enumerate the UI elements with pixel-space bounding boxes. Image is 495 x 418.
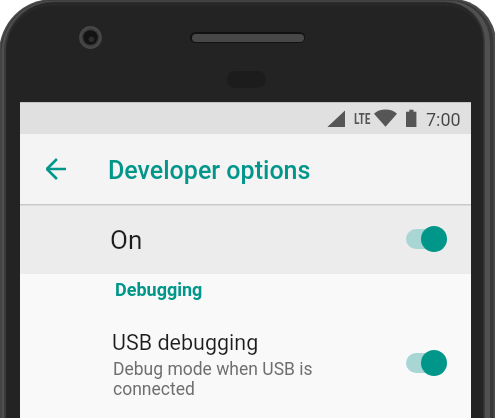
staticText: Debug mode when USB is connected: [113, 359, 313, 399]
staticText: USB debugging: [112, 330, 259, 355]
staticText: Developer options: [108, 156, 311, 185]
button[interactable]: On: [20, 206, 471, 274]
button[interactable]: Back: [31, 145, 79, 193]
staticText: Debugging: [115, 279, 203, 300]
button[interactable]: USB debugging: [20, 315, 471, 418]
staticText: 7:00: [426, 109, 461, 130]
staticText: On: [110, 225, 143, 255]
staticText: LTE: [354, 110, 371, 128]
